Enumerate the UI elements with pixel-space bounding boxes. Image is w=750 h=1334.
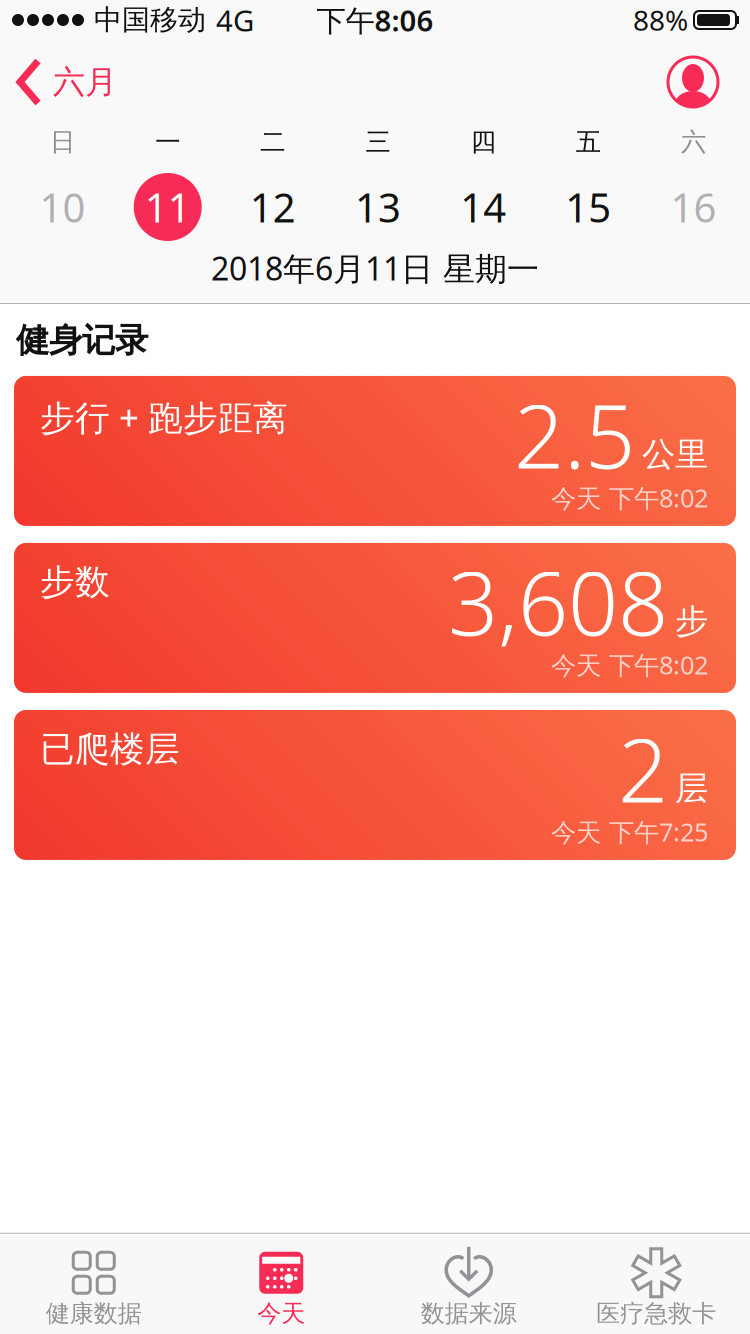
staticText: 层 [675,768,708,809]
button[interactable]: 15 [536,180,641,233]
staticText: 六月 [53,62,117,102]
button[interactable]: 健康数据 [0,1234,187,1328]
staticText: 三 [365,126,390,157]
button[interactable]: 六月 [0,59,117,105]
staticText: 14 [460,180,506,233]
staticText: 今天 [257,1299,305,1328]
button[interactable]: 已爬楼层 [14,710,736,860]
staticText: 13 [355,180,401,233]
staticText: 步 [675,601,708,642]
button[interactable]: 11 [115,173,220,241]
staticText: 四 [471,126,496,157]
staticText: 15 [565,180,611,233]
staticText: 中国移动 [94,3,206,37]
staticText: 2 [618,710,668,827]
button[interactable] [668,57,750,107]
staticText: 11 [145,180,191,233]
staticText: 日 [50,126,75,157]
staticText: 4G [216,0,254,39]
staticText: 今天 下午7:25 [551,815,708,848]
staticText: 五 [576,126,601,157]
button[interactable]: 16 [641,180,746,233]
button[interactable]: 10 [10,180,115,233]
staticText: 步数 [40,561,110,603]
staticText: 医疗急救卡 [596,1299,716,1328]
staticText: 下午8:06 [316,0,433,39]
staticText: 今天 下午8:02 [551,481,708,514]
staticText: 公里 [642,434,708,475]
staticText: 3,608 [448,543,668,660]
staticText: 10 [40,180,86,233]
button[interactable]: 步数 [14,543,736,693]
staticText: 已爬楼层 [40,728,180,770]
staticText: 一 [155,126,180,157]
staticText: 二 [260,126,285,157]
staticText: 2.5 [514,376,635,493]
staticText: 数据来源 [421,1299,517,1328]
staticText: 步行 + 跑步距离 [40,394,288,440]
staticText: 16 [670,180,716,233]
button[interactable]: 12 [220,180,325,233]
staticText: 88% [633,1,688,39]
staticText: 12 [250,180,296,233]
button[interactable]: 医疗急救卡 [562,1234,750,1328]
staticText: 健身记录 [16,320,148,361]
staticText: 2018年6月11日 星期一 [211,247,539,289]
staticText: 今天 下午8:02 [551,648,708,681]
staticText: 健康数据 [46,1299,142,1328]
button[interactable]: 13 [325,180,430,233]
staticText: 六 [681,126,706,157]
button[interactable]: 步行 + 跑步距离 [14,376,736,526]
button[interactable]: 今天 [187,1234,375,1328]
button[interactable]: 数据来源 [375,1234,562,1328]
button[interactable]: 14 [431,180,536,233]
